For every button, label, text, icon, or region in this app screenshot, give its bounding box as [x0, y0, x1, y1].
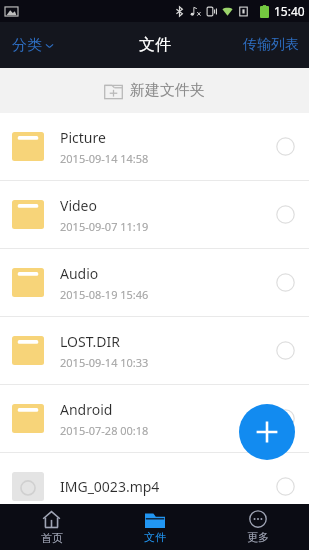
staticText: 2015-08-19 15:46 [60, 287, 149, 302]
staticText: 2015-09-14 10:33 [60, 355, 149, 370]
button[interactable]: Audio [0, 249, 309, 317]
button[interactable]: Add [239, 404, 295, 460]
staticText: 2015-07-28 00:18 [60, 423, 149, 438]
button[interactable]: 首页 [0, 504, 103, 550]
staticText: 15:40 [274, 3, 305, 19]
button[interactable]: Android [0, 385, 309, 453]
button[interactable]: 传输列表 [243, 36, 299, 54]
staticText: 新建文件夹 [130, 81, 205, 100]
staticText: 分类 [12, 36, 42, 55]
staticText: IMG_0023.mp4 [60, 477, 160, 496]
staticText: 2015-09-14 14:58 [60, 151, 149, 166]
button[interactable]: IMG_0023.mp4 [0, 453, 309, 521]
button[interactable]: LOST.DIR [0, 317, 309, 385]
staticText: 文件 [139, 35, 171, 55]
button[interactable]: 更多 [206, 504, 309, 550]
button[interactable]: 新建文件夹 [0, 68, 309, 113]
button[interactable]: Picture [0, 113, 309, 181]
button[interactable]: 分类 [12, 36, 54, 55]
staticText: 首页 [41, 531, 63, 545]
staticText: 文件 [144, 530, 166, 544]
staticText: 更多 [247, 530, 269, 544]
staticText: 2015-09-07 11:19 [60, 219, 149, 234]
staticText: Picture [60, 128, 106, 147]
staticText: LOST.DIR [60, 332, 121, 351]
staticText: Video [60, 196, 97, 215]
staticText: Android [60, 400, 113, 419]
button[interactable]: Video [0, 181, 309, 249]
staticText: Audio [60, 264, 99, 283]
button[interactable]: 文件 [103, 504, 206, 550]
